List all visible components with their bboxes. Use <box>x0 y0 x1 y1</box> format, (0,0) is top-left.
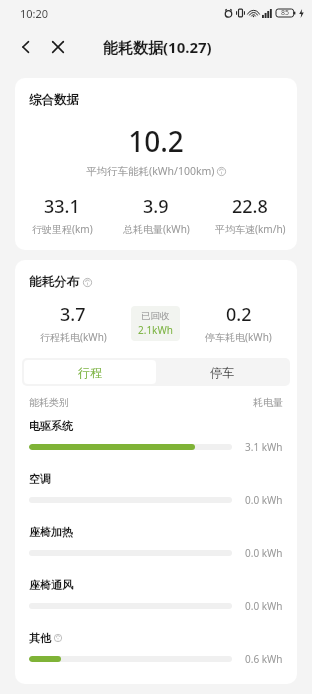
button[interactable]: 停车 <box>156 360 288 384</box>
staticText: 0.0 kWh <box>245 493 283 507</box>
staticText: 平均车速(km/h) <box>215 222 286 236</box>
staticText: 行驶里程(km) <box>32 222 93 236</box>
staticText: 座椅加热 <box>29 525 73 539</box>
button[interactable]: 电驱系统 <box>15 419 297 472</box>
staticText: 其他 <box>29 631 51 645</box>
staticText: 3.1 kWh <box>245 440 283 454</box>
staticText: 行程耗电(kWh) <box>40 330 107 344</box>
button[interactable]: 其他 <box>15 631 297 684</box>
staticText: 10:20 <box>20 6 49 21</box>
staticText: 能耗分布 <box>29 274 79 290</box>
staticText: 33.1 <box>44 194 80 219</box>
staticText: 停车 <box>210 365 234 380</box>
staticText: 空调 <box>29 472 51 486</box>
staticText: 0.0 kWh <box>245 599 283 613</box>
staticText: 座椅通风 <box>29 578 73 592</box>
button[interactable]: Back <box>14 35 38 59</box>
staticText: 22.8 <box>232 194 268 219</box>
staticText: 停车耗电(kWh) <box>205 330 272 344</box>
staticText: 0.2 <box>226 302 252 327</box>
button[interactable]: 座椅加热 <box>15 525 297 578</box>
staticText: 10.2 <box>15 122 297 160</box>
staticText: 2.1kWh <box>138 323 173 337</box>
staticText: 3.9 <box>143 194 169 219</box>
staticText: 0.0 kWh <box>245 546 283 560</box>
staticText: 0.6 kWh <box>245 652 283 666</box>
staticText: 耗电量 <box>253 396 283 409</box>
button[interactable]: 行程 <box>24 360 156 384</box>
staticText: 综合数据 <box>29 92 79 108</box>
staticText: 能耗类别 <box>29 396 69 409</box>
staticText: 平均行车能耗(kWh/100km) <box>86 164 215 178</box>
staticText: 已回收 <box>141 310 170 322</box>
staticText: 行程 <box>78 365 102 380</box>
staticText: 总耗电量(kWh) <box>123 222 190 236</box>
staticText: 电驱系统 <box>29 419 73 433</box>
button[interactable]: Close <box>46 35 70 59</box>
staticText: 3.7 <box>60 302 86 327</box>
staticText: 85 <box>281 8 290 18</box>
staticText: 能耗数据(10.27) <box>103 37 212 57</box>
button[interactable]: 座椅通风 <box>15 578 297 631</box>
button[interactable]: 空调 <box>15 472 297 525</box>
